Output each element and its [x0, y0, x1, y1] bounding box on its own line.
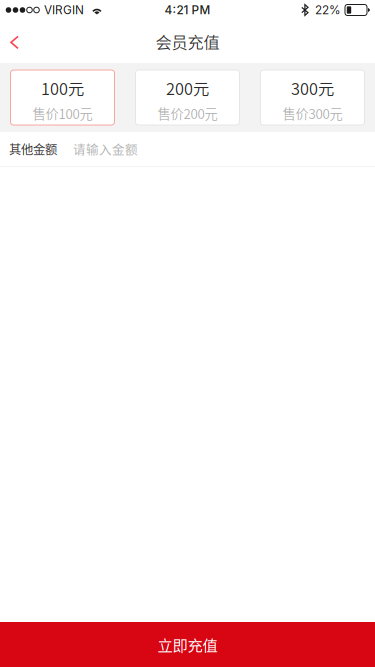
button[interactable]: 200元	[135, 70, 239, 125]
staticText: 售价100元	[32, 104, 92, 123]
button[interactable]: 其他金额	[0, 132, 375, 166]
button[interactable]: 立即充值	[0, 622, 375, 667]
staticText: VIRGIN	[44, 3, 84, 17]
staticText: 售价300元	[282, 104, 342, 123]
staticText: 售价200元	[157, 104, 217, 123]
staticText: 4:21 PM	[164, 3, 210, 17]
button[interactable]: Back	[0, 23, 37, 59]
button[interactable]: 100元	[10, 70, 114, 125]
staticText: 100元	[41, 76, 84, 100]
staticText: 300元	[291, 76, 334, 100]
staticText: 200元	[166, 76, 209, 100]
staticText: 请输入金额	[73, 140, 138, 158]
staticText: 立即充值	[157, 633, 217, 656]
staticText: 会员充值	[155, 30, 219, 53]
staticText: 22%	[315, 3, 341, 17]
staticText: 其他金额	[9, 140, 57, 158]
button[interactable]: 300元	[260, 70, 364, 125]
